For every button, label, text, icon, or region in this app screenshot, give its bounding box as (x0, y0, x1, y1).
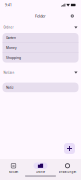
button[interactable]: Ordner (27, 162, 54, 174)
button[interactable]: Ordner (2, 22, 78, 33)
staticText: Garten (6, 36, 16, 40)
button[interactable]: Notizen (0, 162, 27, 174)
staticText: Notizen (8, 170, 18, 174)
button[interactable]: Notiz (2, 83, 78, 92)
button[interactable]: Notizen (2, 63, 78, 83)
button[interactable]: Konto (69, 12, 76, 20)
staticText: Notizen (3, 71, 14, 74)
button[interactable]: Einstellungen (54, 162, 81, 174)
staticText: Money (6, 46, 17, 50)
staticText: Ordner (36, 170, 45, 174)
button[interactable]: Neu (64, 143, 75, 154)
staticText: 9:41 (5, 3, 12, 7)
staticText: Einstellungen (58, 170, 76, 174)
staticText: Felder (35, 13, 46, 19)
button[interactable]: Shopping (2, 53, 78, 63)
staticText: Notiz (6, 85, 14, 90)
button[interactable]: Garten (2, 33, 78, 43)
staticText: Shopping (6, 56, 21, 60)
staticText: Ordner (3, 26, 13, 29)
button[interactable]: Money (2, 43, 78, 53)
